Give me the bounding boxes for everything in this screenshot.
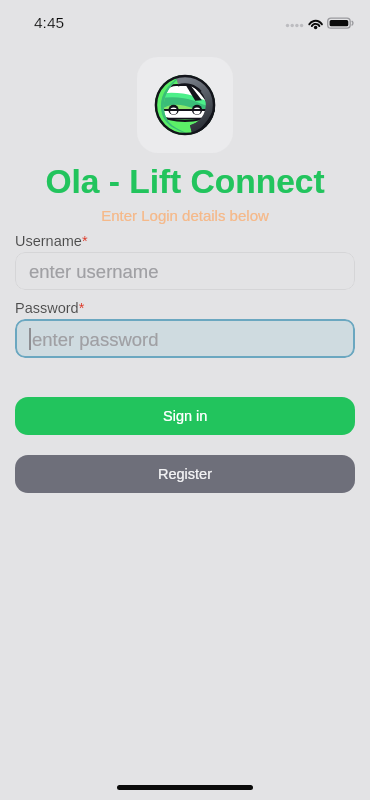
staticText: 4:45	[34, 14, 65, 31]
button[interactable]: enter password	[15, 319, 355, 358]
staticText: Ola - Lift Connect	[0, 163, 370, 200]
staticText: enter username	[29, 261, 159, 282]
staticText: Username*	[15, 233, 88, 249]
staticText: Register	[158, 466, 212, 482]
button[interactable]: enter username	[15, 252, 355, 290]
staticText: Sign in	[163, 408, 208, 424]
staticText: Password*	[15, 300, 85, 316]
staticText: enter password	[32, 329, 159, 350]
staticText: Enter Login details below	[0, 207, 370, 224]
button[interactable]: Register	[15, 455, 355, 493]
button[interactable]: Sign in	[15, 397, 355, 435]
